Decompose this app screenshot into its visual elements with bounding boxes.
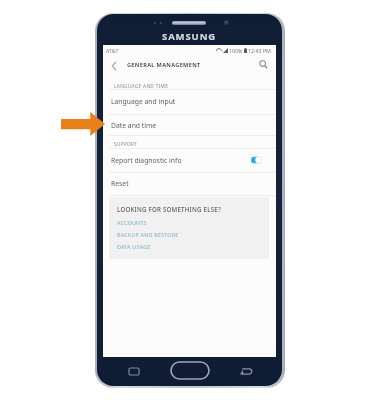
button[interactable]: Back [237, 362, 255, 380]
staticText: Date and time [111, 121, 157, 130]
button[interactable]: Navigate up [108, 60, 120, 72]
staticText: 12:43 PM [248, 47, 271, 54]
staticText: AT&T [106, 47, 119, 54]
staticText: Report diagnostic info [111, 156, 182, 165]
staticText: SAMSUNG [162, 30, 217, 43]
button[interactable]: BACKUP AND RESTORE [117, 231, 179, 238]
staticText: SUPPORT [114, 141, 138, 147]
staticText: LOOKING FOR SOMETHING ELSE? [117, 205, 221, 213]
button[interactable]: Language and input [103, 89, 276, 114]
staticText: Reset [111, 179, 129, 188]
button[interactable]: Reset [103, 172, 276, 195]
button[interactable]: Home [171, 362, 209, 379]
staticText: LANGUAGE AND TIME [114, 83, 169, 89]
staticText: BACKUP AND RESTORE [117, 231, 179, 238]
button[interactable] [251, 156, 263, 164]
staticText: 100% [229, 47, 243, 54]
button[interactable]: Report diagnostic info [103, 148, 276, 172]
button[interactable]: Search [257, 58, 269, 70]
button[interactable]: ACCOUNTS [117, 219, 147, 226]
button[interactable]: Recent apps [124, 362, 144, 380]
staticText: DATA USAGE [117, 243, 151, 250]
button[interactable]: Date and time [103, 114, 276, 136]
button[interactable]: DATA USAGE [117, 243, 151, 250]
staticText: GENERAL MANAGEMENT [127, 61, 201, 69]
staticText: Language and input [111, 97, 176, 106]
staticText: ACCOUNTS [117, 219, 147, 226]
